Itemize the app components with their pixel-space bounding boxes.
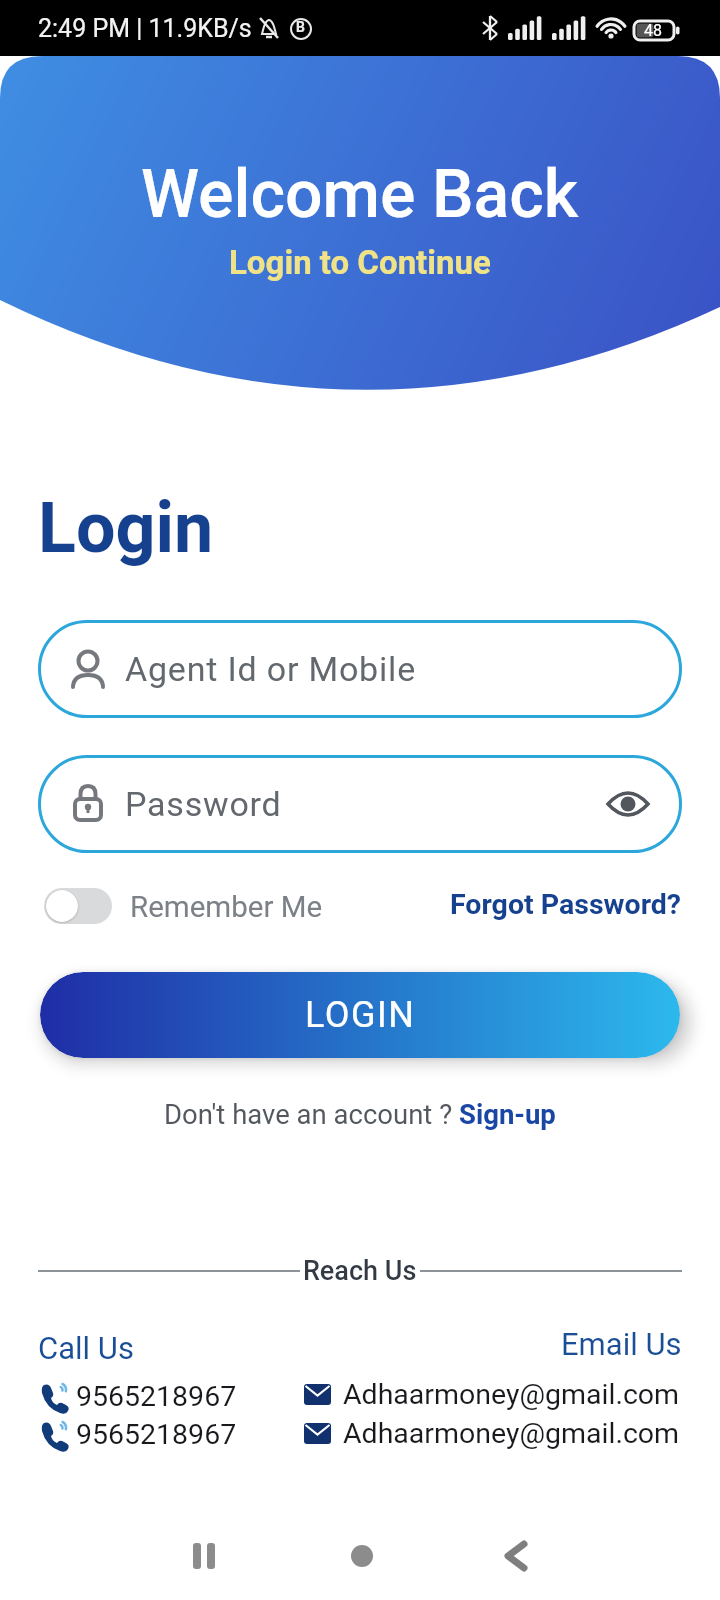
button[interactable]: Password bbox=[38, 755, 682, 853]
button[interactable]: Email Us bbox=[561, 1326, 682, 1362]
staticText: LOGIN bbox=[305, 994, 416, 1036]
button[interactable]: LOGIN bbox=[40, 972, 680, 1058]
button[interactable]: Adhaarmoney@gmail.com bbox=[304, 1376, 680, 1412]
staticText: 9565218967 bbox=[76, 1418, 237, 1451]
button[interactable]: 9565218967 bbox=[38, 1378, 288, 1414]
staticText: Login bbox=[38, 487, 214, 569]
button[interactable]: 9565218967 bbox=[38, 1416, 288, 1452]
staticText: Welcome Back bbox=[141, 156, 579, 233]
button[interactable]: Forgot Password? bbox=[450, 888, 682, 921]
button[interactable]: Adhaarmoney@gmail.com bbox=[304, 1415, 680, 1451]
staticText: Adhaarmoney@gmail.com bbox=[343, 1378, 680, 1411]
staticText: Adhaarmoney@gmail.com bbox=[343, 1417, 680, 1450]
staticText: 9565218967 bbox=[76, 1380, 237, 1413]
button[interactable] bbox=[193, 1543, 217, 1569]
staticText: Login to Continue bbox=[229, 243, 491, 282]
staticText: Remember Me bbox=[130, 890, 323, 925]
staticText: 2:49 PM | 11.9KB/s bbox=[38, 14, 252, 43]
staticText: Reach Us bbox=[303, 1255, 417, 1287]
staticText: Agent Id or Mobile bbox=[125, 649, 416, 689]
button[interactable] bbox=[351, 1545, 373, 1567]
button[interactable]: Don't have an account ? Sign-up bbox=[164, 1098, 556, 1130]
staticText: Password bbox=[125, 784, 282, 824]
button[interactable] bbox=[44, 888, 112, 924]
button[interactable] bbox=[606, 782, 650, 826]
staticText: B bbox=[296, 19, 305, 35]
button[interactable]: Call Us bbox=[38, 1330, 134, 1366]
button[interactable] bbox=[504, 1542, 528, 1570]
staticText: 48 bbox=[644, 21, 662, 40]
button[interactable]: Agent Id or Mobile bbox=[38, 620, 682, 718]
